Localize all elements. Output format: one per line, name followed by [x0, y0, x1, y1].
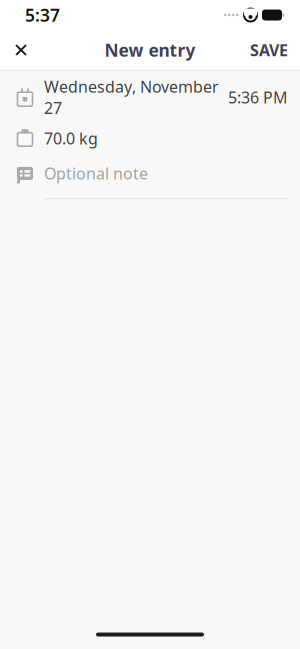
button[interactable]: Optional note — [0, 159, 300, 204]
staticText: Wednesday, November 27 — [44, 76, 219, 118]
staticText: 5:37 — [25, 3, 60, 26]
button[interactable]: SAVE — [244, 33, 294, 67]
staticText: 5:36 PM — [228, 87, 288, 108]
button[interactable]: 70.0 kg — [0, 118, 300, 159]
staticText: SAVE — [250, 39, 288, 61]
button[interactable]: Wednesday, November 27 — [0, 77, 300, 118]
staticText: New entry — [104, 38, 195, 61]
staticText: Optional note — [44, 163, 148, 184]
button[interactable]: Close — [4, 33, 38, 67]
staticText: 70.0 kg — [44, 128, 98, 149]
